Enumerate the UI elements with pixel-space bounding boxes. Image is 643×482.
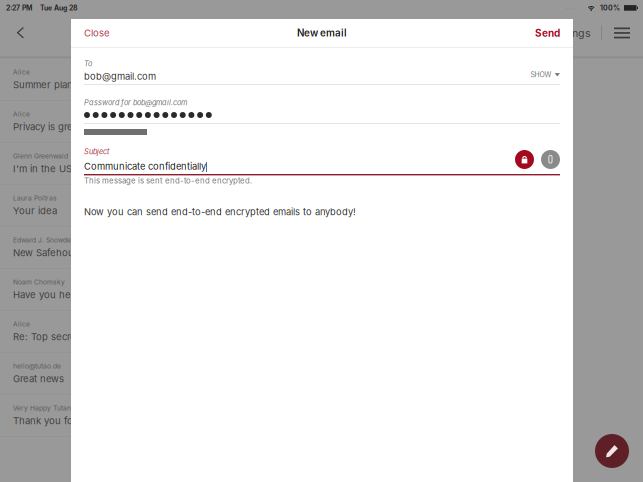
staticText: To (84, 59, 92, 68)
button[interactable]: Send (522, 22, 573, 44)
staticText: New Safehou (13, 247, 74, 259)
button[interactable]: Very Happy Tutanota (0, 395, 230, 437)
button[interactable]: SHOW (523, 71, 560, 84)
button[interactable]: Close (71, 22, 123, 44)
button[interactable]: Alice (0, 101, 230, 143)
staticText: Privacy is gre (13, 121, 73, 133)
button[interactable]: Menu (613, 15, 631, 50)
staticText: Summer plan (13, 79, 73, 91)
staticText: Alice (13, 110, 30, 118)
staticText: New email (297, 27, 347, 39)
staticText: This message is sent end-to-end encrypte… (84, 176, 252, 185)
staticText: 100% (600, 4, 620, 12)
button[interactable]: Glenn Greenwald (0, 143, 230, 185)
staticText: Your idea (13, 205, 57, 217)
button[interactable]: Attach file (541, 150, 560, 169)
staticText: Settings (550, 26, 591, 39)
button[interactable]: Laura Poitras (0, 185, 230, 227)
staticText: Great news (13, 373, 64, 385)
button[interactable]: Confidential (515, 150, 534, 169)
staticText: I'm in the US (13, 163, 72, 175)
button[interactable]: Noam Chomsky (0, 269, 230, 311)
button[interactable]: Alice (0, 311, 230, 353)
staticText: Thank you fo (13, 415, 73, 427)
staticText: Very Happy Tutanota (13, 404, 81, 412)
staticText: Send (535, 27, 560, 39)
staticText: Close (84, 27, 110, 39)
staticText: Password for bob@gmail.com (84, 98, 187, 107)
button[interactable]: Alice (0, 59, 230, 101)
staticText: Subject (84, 147, 109, 156)
staticText: Laura Poitras (13, 194, 57, 202)
staticText: 2:27 PM (6, 4, 32, 12)
staticText: bob@gmail.com (84, 71, 156, 82)
staticText: Re: Top secre (13, 331, 76, 343)
staticText: Tue Aug 28 (40, 4, 78, 12)
button[interactable]: Edward J. Snowden (0, 227, 230, 269)
staticText: SHOW (531, 71, 552, 79)
button[interactable]: Compose (595, 434, 629, 468)
staticText: Glenn Greenwald (13, 152, 68, 160)
button[interactable]: hello@tutao.de (0, 353, 230, 395)
button[interactable]: Back (0, 15, 38, 50)
staticText: Have you hea (13, 289, 76, 301)
staticText: Alice (13, 68, 30, 76)
staticText: hello@tutao.de (13, 362, 61, 370)
staticText: Alice (13, 320, 30, 328)
staticText: Communicate confidentially (84, 161, 206, 172)
staticText: Now you can send end-to-end encrypted em… (84, 206, 356, 217)
staticText: Edward J. Snowden (13, 236, 75, 244)
staticText: Noam Chomsky (13, 278, 65, 286)
